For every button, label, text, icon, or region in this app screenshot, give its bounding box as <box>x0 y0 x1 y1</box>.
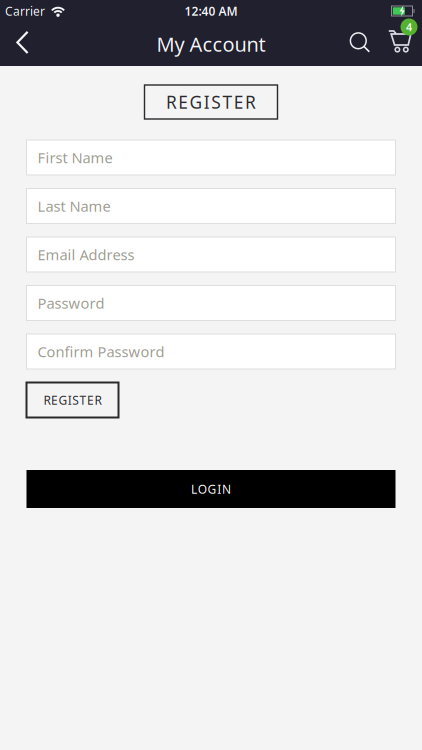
staticText: REGISTER <box>44 392 101 408</box>
button[interactable]: Search <box>346 32 382 55</box>
staticText: 12:40 AM <box>184 3 237 19</box>
staticText: First Name <box>37 148 112 167</box>
button[interactable]: Back <box>0 31 41 57</box>
staticText: REGISTER <box>166 90 256 113</box>
textField[interactable]: Last Name <box>37 196 395 216</box>
button[interactable]: Cart <box>382 30 422 58</box>
staticText: LOGIN <box>191 481 231 497</box>
staticText: Carrier <box>5 3 45 19</box>
staticText: My Account <box>156 31 265 57</box>
staticText: 4 <box>406 20 412 34</box>
staticText: Confirm Password <box>37 342 164 361</box>
secureTextField[interactable]: Password <box>37 293 395 313</box>
button[interactable]: REGISTER <box>26 382 118 417</box>
textField[interactable]: Email Address <box>37 245 395 264</box>
secureTextField[interactable]: Confirm Password <box>37 342 395 361</box>
textField[interactable]: First Name <box>37 148 395 167</box>
staticText: Last Name <box>37 196 110 216</box>
button[interactable]: LOGIN <box>26 470 395 508</box>
staticText: Email Address <box>37 245 134 264</box>
staticText: Password <box>37 293 104 313</box>
